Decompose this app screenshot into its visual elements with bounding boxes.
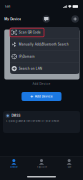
staticText: Scan QR Code bbox=[19, 31, 41, 34]
staticText: DMSS bbox=[12, 114, 21, 117]
staticText: Device bbox=[10, 165, 17, 169]
button[interactable]: Manually Add/Bluetooth Search bbox=[10, 39, 79, 50]
button[interactable]: Explore bbox=[28, 157, 55, 171]
staticText: Search on LAN bbox=[19, 67, 42, 70]
staticText: Me bbox=[68, 165, 71, 169]
staticText: Add Device bbox=[32, 82, 50, 86]
staticText: Manually Add/Bluetooth Search bbox=[19, 43, 69, 46]
button[interactable]: Search on LAN bbox=[10, 63, 79, 74]
staticText: Explore bbox=[36, 165, 46, 169]
button[interactable]: Scan QR Code bbox=[10, 27, 79, 38]
staticText: A quick glance at the live view of your … bbox=[6, 120, 60, 123]
button[interactable]: Device bbox=[0, 157, 28, 171]
staticText: My Device bbox=[4, 17, 21, 21]
button[interactable]: Add Device bbox=[21, 92, 61, 101]
button[interactable]: Add device bbox=[71, 15, 79, 23]
button[interactable]: Messages bbox=[43, 15, 50, 23]
staticText: Add Device bbox=[35, 95, 53, 98]
staticText: IP/Domain bbox=[19, 55, 35, 58]
staticText: 1:01 bbox=[5, 5, 10, 8]
button[interactable]: DMSS bbox=[3, 111, 80, 133]
button[interactable]: Me bbox=[55, 157, 83, 171]
button[interactable]: IP/Domain bbox=[10, 51, 79, 62]
